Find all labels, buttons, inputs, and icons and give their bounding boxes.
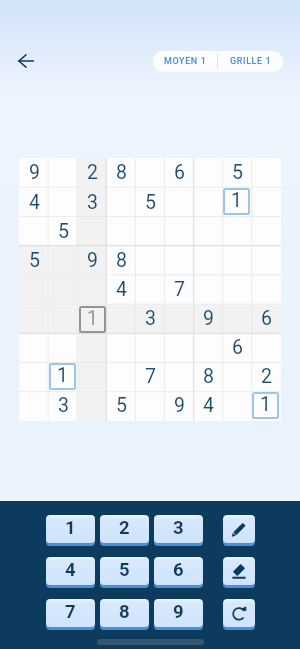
button[interactable]: 2: [100, 515, 149, 546]
button[interactable]: [19, 305, 49, 334]
button[interactable]: 5: [19, 247, 49, 276]
button[interactable]: 5: [100, 557, 149, 588]
button[interactable]: 7: [165, 276, 194, 305]
button[interactable]: [194, 158, 223, 188]
button[interactable]: [165, 363, 194, 392]
staticText: 8: [119, 601, 130, 623]
button[interactable]: [107, 218, 136, 247]
button[interactable]: 3: [78, 188, 107, 218]
button[interactable]: [223, 218, 252, 247]
button[interactable]: 1: [252, 392, 279, 419]
button[interactable]: [194, 276, 223, 305]
button[interactable]: [165, 218, 194, 247]
button[interactable]: [223, 363, 252, 392]
button[interactable]: 1: [49, 363, 76, 390]
button[interactable]: Back: [12, 47, 40, 75]
button[interactable]: [252, 276, 281, 305]
button[interactable]: Redo: [223, 599, 255, 630]
button[interactable]: [49, 188, 78, 218]
button[interactable]: 3: [154, 515, 203, 546]
button[interactable]: 3: [136, 305, 165, 334]
button[interactable]: 8: [194, 363, 223, 392]
button[interactable]: [19, 363, 49, 392]
button[interactable]: [252, 218, 281, 247]
button[interactable]: [165, 305, 194, 334]
button[interactable]: [78, 334, 107, 363]
button[interactable]: [78, 218, 107, 247]
button[interactable]: [107, 363, 136, 392]
button[interactable]: [223, 305, 252, 334]
button[interactable]: 9: [194, 305, 223, 334]
button[interactable]: 2: [252, 363, 281, 392]
button[interactable]: [165, 188, 194, 218]
button[interactable]: 6: [154, 557, 203, 588]
button[interactable]: 8: [107, 158, 136, 188]
button[interactable]: [136, 276, 165, 305]
button[interactable]: Notes: [223, 515, 255, 546]
button[interactable]: [194, 247, 223, 276]
button[interactable]: 1: [46, 515, 95, 546]
button[interactable]: [223, 247, 252, 276]
button[interactable]: [136, 392, 165, 421]
button[interactable]: Erase: [223, 557, 255, 588]
button[interactable]: 4: [194, 392, 223, 421]
button[interactable]: [136, 218, 165, 247]
staticText: MOYEN 1: [164, 56, 207, 67]
button[interactable]: MOYEN 1: [153, 51, 283, 72]
button[interactable]: 4: [19, 188, 49, 218]
button[interactable]: [49, 334, 78, 363]
button[interactable]: [19, 334, 49, 363]
button[interactable]: 5: [107, 392, 136, 421]
button[interactable]: [49, 305, 78, 334]
button[interactable]: 6: [223, 334, 252, 363]
button[interactable]: 1: [78, 305, 107, 334]
button[interactable]: 8: [100, 599, 149, 630]
button[interactable]: 7: [136, 363, 165, 392]
button[interactable]: [165, 247, 194, 276]
button[interactable]: [136, 158, 165, 188]
button[interactable]: [252, 392, 281, 421]
button[interactable]: [49, 363, 78, 392]
button[interactable]: [49, 158, 78, 188]
button[interactable]: 6: [165, 158, 194, 188]
button[interactable]: 2: [78, 158, 107, 188]
button[interactable]: [223, 276, 252, 305]
button[interactable]: [107, 334, 136, 363]
button[interactable]: 9: [154, 599, 203, 630]
button[interactable]: [78, 276, 107, 305]
button[interactable]: [78, 363, 107, 392]
button[interactable]: 4: [46, 557, 95, 588]
button[interactable]: 3: [49, 392, 78, 421]
button[interactable]: [194, 334, 223, 363]
button[interactable]: [165, 334, 194, 363]
button[interactable]: [107, 188, 136, 218]
button[interactable]: [78, 392, 107, 421]
button[interactable]: 1: [223, 188, 250, 215]
button[interactable]: [223, 188, 252, 218]
button[interactable]: 4: [107, 276, 136, 305]
button[interactable]: [252, 188, 281, 218]
button[interactable]: 9: [165, 392, 194, 421]
button[interactable]: 9: [78, 247, 107, 276]
button[interactable]: [136, 334, 165, 363]
button[interactable]: [136, 247, 165, 276]
button[interactable]: [194, 188, 223, 218]
button[interactable]: 5: [49, 218, 78, 247]
button[interactable]: 5: [223, 158, 252, 188]
button[interactable]: 8: [107, 247, 136, 276]
button[interactable]: 9: [19, 158, 49, 188]
button[interactable]: [107, 305, 136, 334]
button[interactable]: 7: [46, 599, 95, 630]
button[interactable]: 6: [252, 305, 281, 334]
button[interactable]: 5: [136, 188, 165, 218]
button[interactable]: [252, 334, 281, 363]
button[interactable]: [194, 218, 223, 247]
button[interactable]: [19, 218, 49, 247]
